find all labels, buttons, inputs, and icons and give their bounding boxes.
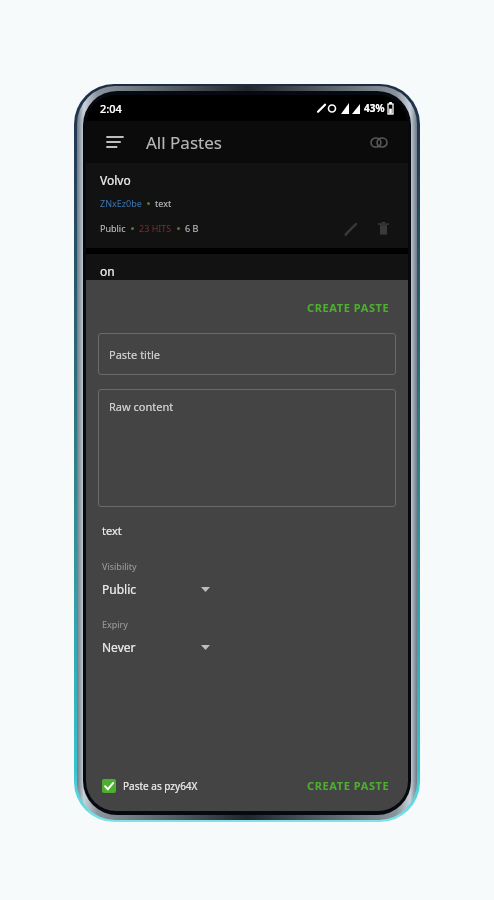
staticText: Never [102, 639, 136, 655]
button[interactable]: CREATE PASTE [301, 296, 396, 319]
staticText: All Pastes [146, 131, 222, 154]
button[interactable]: Never [102, 636, 214, 658]
staticText: text [155, 197, 172, 209]
button[interactable]: Edit paste [340, 217, 362, 239]
staticText: on [100, 263, 115, 279]
button[interactable]: CREATE PASTE [301, 774, 396, 797]
button[interactable]: Raw content [98, 389, 396, 507]
staticText: Public [102, 581, 137, 597]
button[interactable]: Public [102, 578, 214, 600]
staticText: Volvo [100, 172, 131, 188]
staticText: CREATE PASTE [307, 300, 390, 315]
button[interactable]: on [86, 254, 408, 329]
staticText: Raw content [109, 399, 174, 414]
staticText: Paste title [109, 347, 160, 362]
button[interactable]: Volvo [86, 163, 408, 248]
staticText: text [102, 523, 122, 538]
staticText: 23 HITS [139, 222, 172, 234]
staticText: 2:04 [100, 101, 122, 116]
staticText: Paste as pzy64X [123, 779, 198, 793]
staticText: 6 B [185, 222, 199, 234]
staticText: CREATE PASTE [307, 778, 390, 793]
staticText: Expiry [102, 618, 128, 630]
button[interactable]: Delete paste [372, 217, 394, 239]
staticText: ZNxEz0be [100, 197, 142, 209]
button[interactable]: Paste as pzy64X [100, 775, 200, 797]
staticText: 43% [364, 101, 385, 115]
button[interactable]: Open navigation menu [98, 125, 132, 159]
button[interactable]: Paste title [98, 333, 396, 375]
staticText: Public [100, 222, 126, 234]
staticText: Visibility [102, 560, 137, 572]
button[interactable]: Copy link [362, 125, 396, 159]
